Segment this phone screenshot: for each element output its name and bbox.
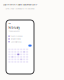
staticText: 9:41: [8, 22, 11, 24]
staticText: Log in with Apple automatically: [3, 3, 37, 6]
staticText: February: [8, 26, 19, 30]
staticText: Design review: [11, 38, 21, 40]
staticText: Team standup: [11, 35, 23, 37]
staticText: Today · 4 events: [8, 30, 20, 32]
staticText: Lunch with Ana: [11, 41, 22, 43]
staticText: Sync your schedule in seconds: [5, 7, 34, 10]
